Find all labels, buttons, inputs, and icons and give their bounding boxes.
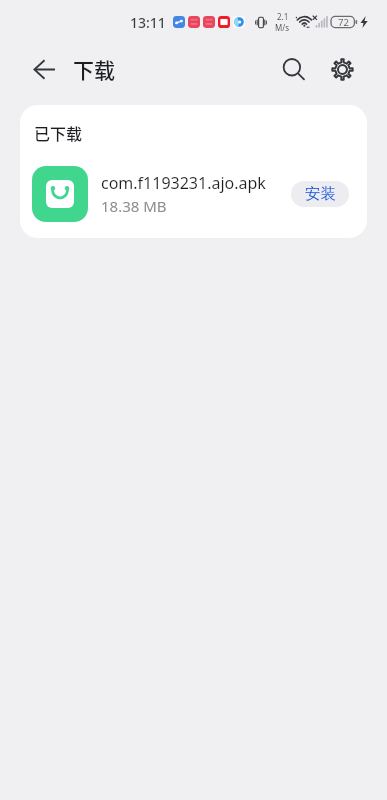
button[interactable]: Settings (320, 47, 364, 91)
staticText: com.f1193231.ajo.apk (101, 172, 266, 194)
staticText: 安装 (305, 184, 336, 204)
button[interactable]: 安装 (291, 181, 349, 207)
staticText: 已下载 (34, 121, 83, 144)
button[interactable]: com.f1193231.ajo.apk (20, 158, 367, 230)
staticText: 13:11 (130, 13, 166, 32)
staticText: 2.1 (277, 11, 289, 22)
staticText: 下载 (73, 54, 115, 84)
staticText: 72 (338, 16, 349, 29)
button[interactable]: Search (271, 47, 315, 91)
staticText: M/s (275, 22, 290, 33)
staticText: 18.38 MB (101, 196, 167, 216)
button[interactable]: Back (22, 47, 66, 91)
